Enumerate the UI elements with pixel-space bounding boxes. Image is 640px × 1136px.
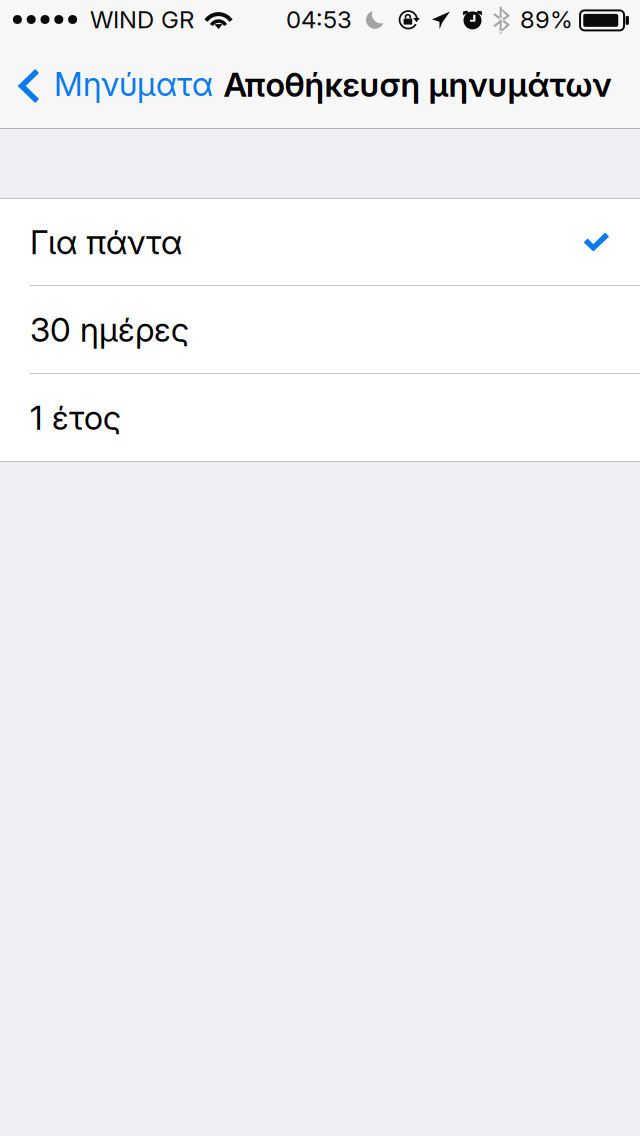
staticText: 30 ημέρες (30, 309, 189, 350)
button[interactable]: Μηνύματα (0, 40, 227, 128)
staticText: 89% (520, 5, 573, 34)
button[interactable]: 1 έτος (0, 374, 640, 461)
staticText: Για πάντα (30, 222, 182, 262)
staticText: 04:53 (286, 5, 352, 34)
staticText: Μηνύματα (54, 64, 213, 104)
button[interactable]: 30 ημέρες (0, 286, 640, 373)
staticText: WIND GR (90, 5, 194, 34)
button[interactable]: Για πάντα (0, 199, 640, 285)
staticText: 1 έτος (30, 397, 121, 438)
staticText: Αποθήκευση μηνυμάτων (223, 64, 611, 105)
